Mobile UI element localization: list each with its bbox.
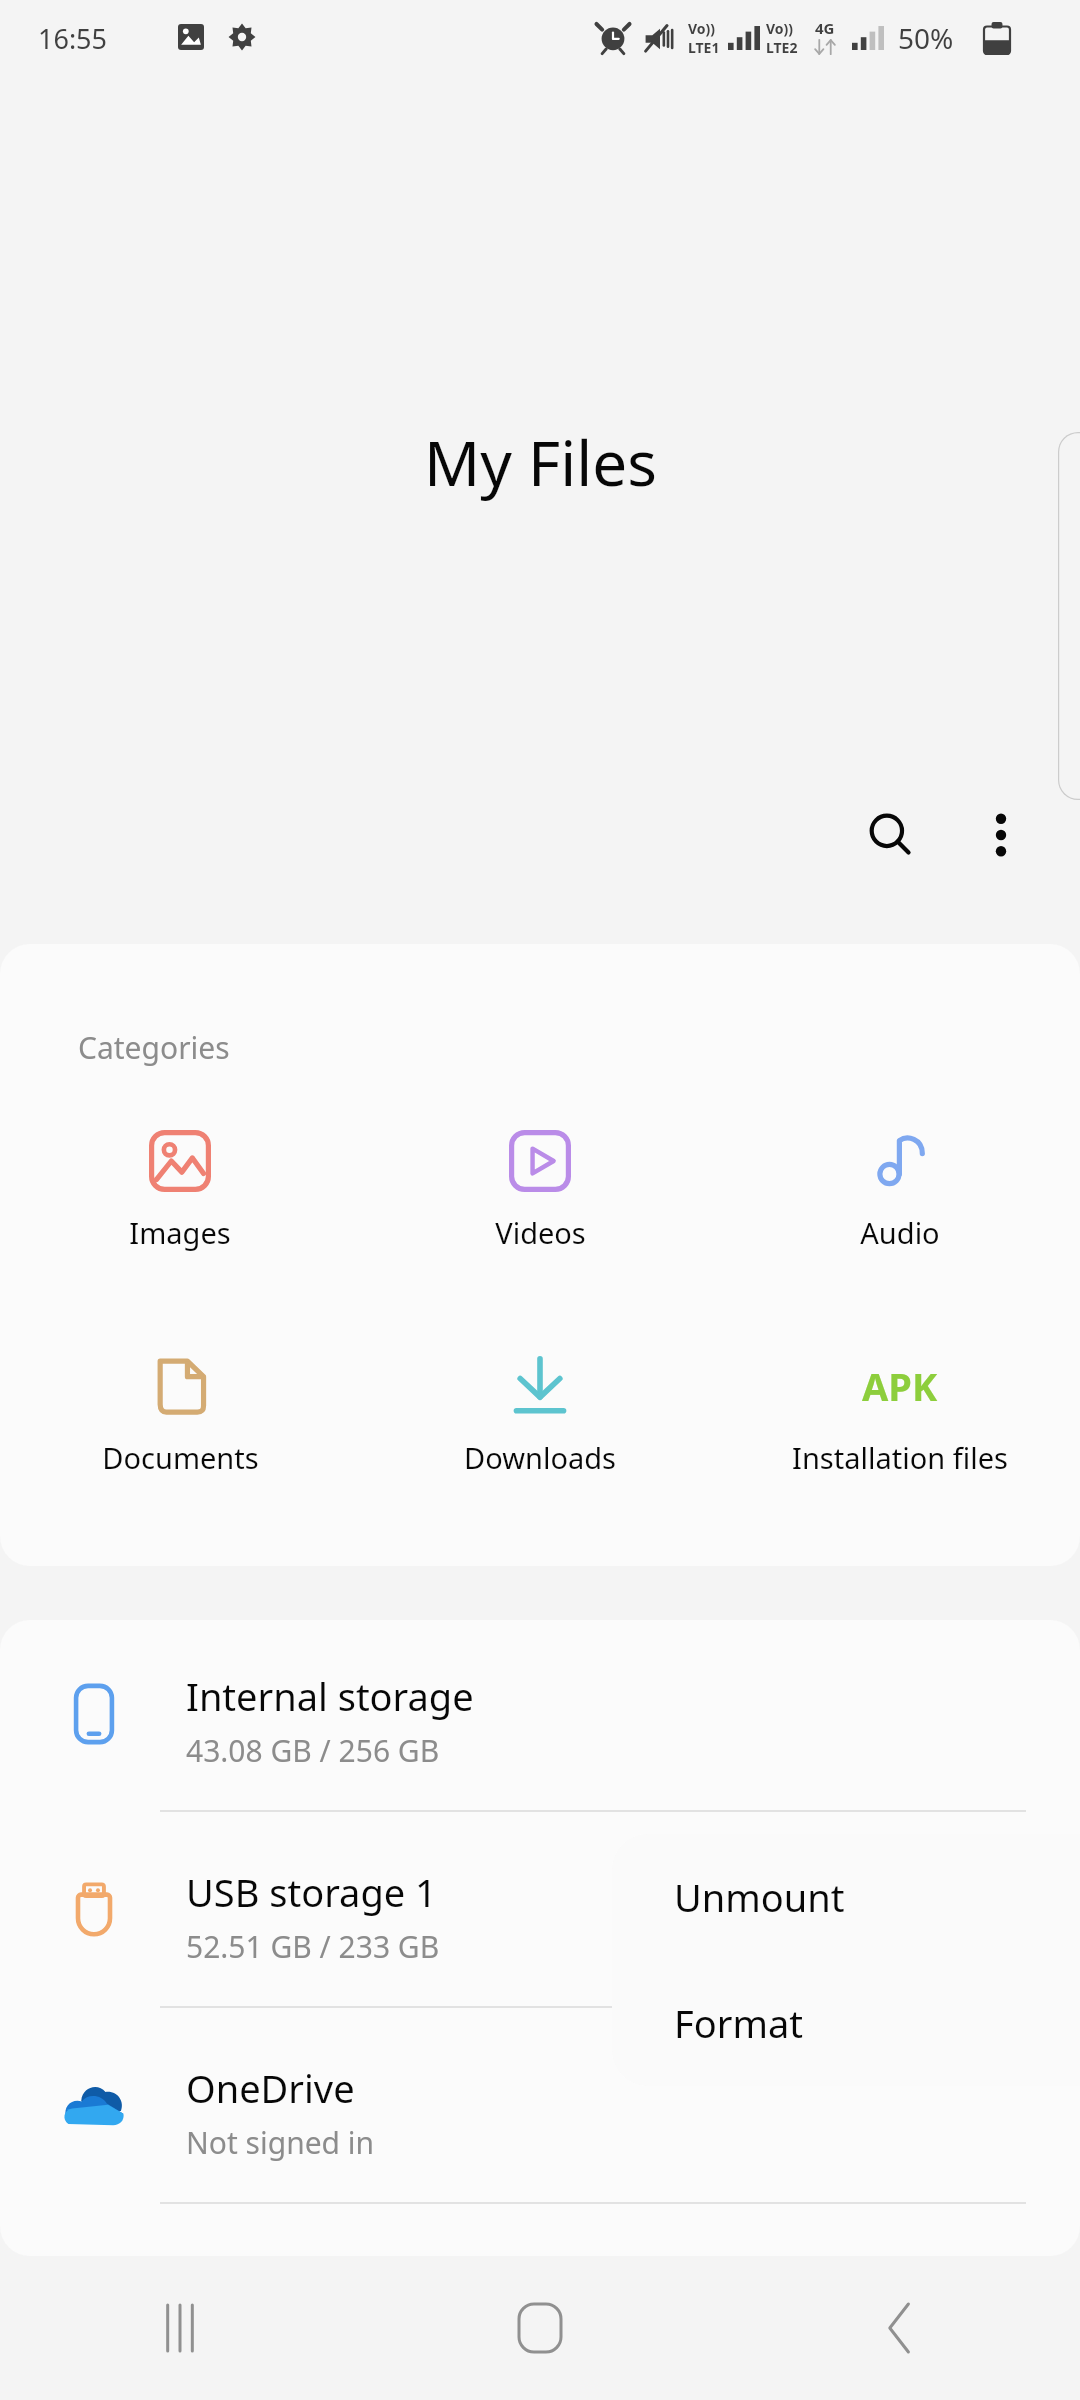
button[interactable]: Images <box>0 1109 360 1309</box>
staticText: 4G <box>815 18 835 38</box>
staticText: USB storage 1 <box>186 1866 437 1918</box>
button[interactable]: Audio <box>720 1109 1080 1309</box>
staticText: 52.51 GB / 233 GB <box>186 1926 440 1967</box>
staticText: Categories <box>78 1027 230 1068</box>
button[interactable]: Recents <box>0 2256 360 2400</box>
staticText: LTE2 <box>766 38 798 57</box>
button[interactable]: Search <box>848 792 934 878</box>
button[interactable]: APK <box>720 1334 1080 1534</box>
button[interactable]: Back <box>720 2256 1080 2400</box>
staticText: Videos <box>495 1213 586 1252</box>
button[interactable]: Unmount <box>612 1834 1080 1960</box>
staticText: Audio <box>860 1213 940 1252</box>
staticText: Not signed in <box>186 2122 375 2163</box>
staticText: Installation files <box>792 1438 1008 1477</box>
button[interactable]: Format <box>612 1960 1080 2086</box>
button[interactable]: OneDrive <box>0 2012 1080 2208</box>
button[interactable]: Internal storage <box>0 1620 1080 1816</box>
staticText: Documents <box>102 1438 259 1477</box>
button[interactable]: Documents <box>0 1334 360 1534</box>
button[interactable]: USB storage 1 <box>0 1816 1080 2012</box>
staticText: 50% <box>898 19 954 57</box>
staticText: Vo)) <box>688 19 716 38</box>
button[interactable]: Home <box>360 2256 720 2400</box>
staticText: My Files <box>424 420 657 504</box>
staticText: Images <box>129 1213 231 1252</box>
staticText: APK <box>862 1360 938 1412</box>
staticText: Downloads <box>464 1438 616 1477</box>
staticText: Vo)) <box>766 19 794 38</box>
staticText: 43.08 GB / 256 GB <box>186 1730 440 1771</box>
button[interactable]: More options <box>958 792 1044 878</box>
button[interactable]: Videos <box>360 1109 720 1309</box>
staticText: Internal storage <box>186 1670 474 1722</box>
staticText: 16:55 <box>38 20 108 57</box>
staticText: Unmount <box>674 1871 845 1923</box>
staticText: LTE1 <box>688 38 720 57</box>
staticText: OneDrive <box>186 2062 355 2114</box>
staticText: Format <box>674 1997 803 2049</box>
button[interactable]: Downloads <box>360 1334 720 1534</box>
